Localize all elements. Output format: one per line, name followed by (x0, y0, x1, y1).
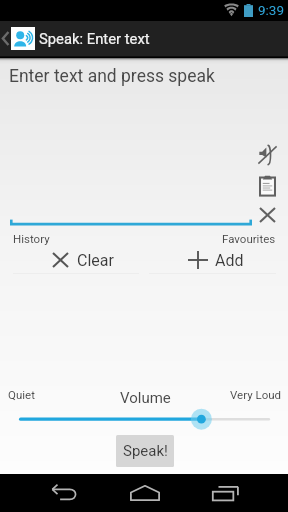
button[interactable]: Volume slider (8, 406, 280, 432)
staticText: Add (215, 251, 244, 270)
staticText: Enter text and press speak (9, 66, 215, 87)
staticText: History (13, 232, 50, 245)
staticText: Clear (77, 251, 114, 270)
button[interactable]: Speak! (116, 435, 174, 467)
button[interactable]: Clear text (252, 199, 283, 230)
staticText: Volume (120, 389, 171, 407)
button[interactable]: Home (115, 474, 175, 512)
staticText: Very Loud (230, 388, 282, 401)
staticText: 9:39 (258, 2, 285, 18)
staticText: Speak: Enter text (39, 30, 150, 47)
button[interactable]: Back (34, 474, 94, 512)
button[interactable]: Recent apps (195, 474, 255, 512)
staticText: Speak! (123, 442, 168, 460)
button[interactable]: Add (149, 247, 276, 274)
button[interactable]: Speak: Enter text (0, 21, 288, 56)
button[interactable]: Mute (252, 139, 283, 170)
staticText: Favourites (222, 232, 276, 245)
staticText: Quiet (8, 388, 35, 401)
button[interactable]: Paste (252, 170, 283, 201)
button[interactable]: Clear (13, 247, 139, 274)
